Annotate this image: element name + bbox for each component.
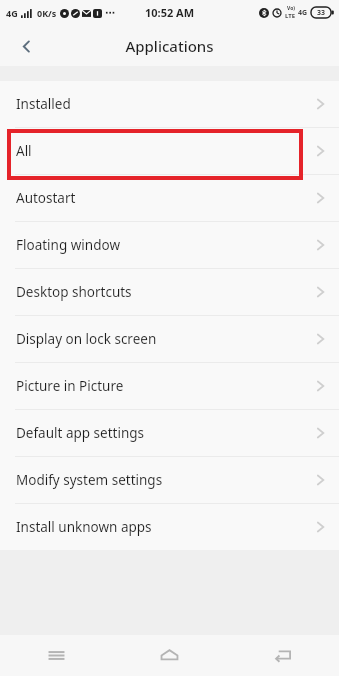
staticText: 4G <box>6 7 18 19</box>
button[interactable]: Back <box>226 635 339 676</box>
staticText: Install unknown apps <box>16 518 152 536</box>
staticText: 4G <box>298 8 308 18</box>
button[interactable]: Autostart <box>0 175 339 221</box>
staticText: Desktop shortcuts <box>16 283 132 301</box>
staticText: ⋯ <box>105 7 115 19</box>
button[interactable]: Floating window <box>0 222 339 268</box>
staticText: 0K/s <box>37 7 57 19</box>
button[interactable]: Install unknown apps <box>0 504 339 550</box>
staticText: Floating window <box>16 236 120 254</box>
staticText: Picture in Picture <box>16 377 124 395</box>
staticText: All <box>16 142 32 160</box>
staticText: 33 <box>317 8 326 18</box>
staticText: Modify system settings <box>16 471 163 489</box>
staticText: Display on lock screen <box>16 330 157 348</box>
staticText: Autostart <box>16 189 76 207</box>
staticText: Applications <box>125 36 214 56</box>
button[interactable]: Picture in Picture <box>0 363 339 409</box>
staticText: Vo) <box>287 5 295 12</box>
button[interactable]: Home <box>113 635 226 676</box>
button[interactable]: Modify system settings <box>0 457 339 503</box>
button[interactable]: Desktop shortcuts <box>0 269 339 315</box>
button[interactable]: All <box>0 128 339 174</box>
button[interactable]: Default app settings <box>0 410 339 456</box>
button[interactable]: Back <box>9 29 43 63</box>
staticText: Default app settings <box>16 424 145 442</box>
button[interactable]: Display on lock screen <box>0 316 339 362</box>
staticText: 10:52 AM <box>145 5 195 20</box>
staticText: Installed <box>16 95 71 113</box>
button[interactable]: Installed <box>0 81 339 127</box>
button[interactable]: Recent apps <box>0 635 113 676</box>
staticText: LTE <box>285 12 296 20</box>
